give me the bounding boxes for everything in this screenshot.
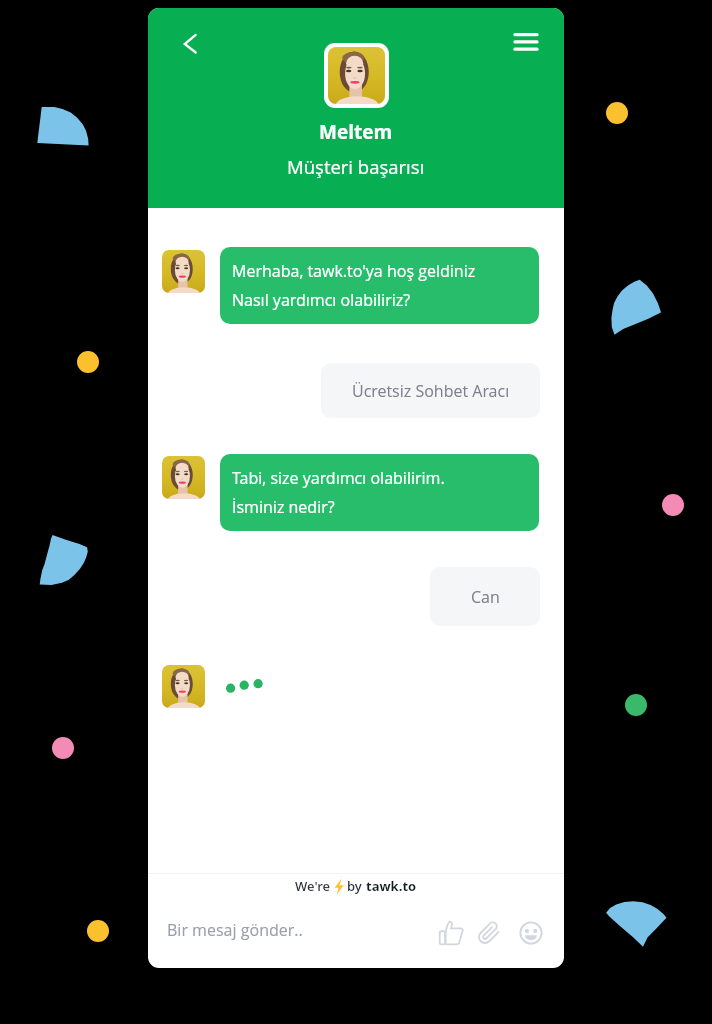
- button[interactable]: Tabi, size yardımcı olabilirim.: [220, 454, 539, 531]
- staticText: We're: [295, 877, 331, 895]
- staticText: İsminiz nedir?: [232, 496, 335, 518]
- staticText: tawk.to: [366, 877, 417, 895]
- button[interactable]: Like: [432, 914, 469, 951]
- staticText: Ücretsiz Sohbet Aracı: [352, 380, 510, 402]
- staticText: Can: [471, 586, 500, 608]
- staticText: Tabi, size yardımcı olabilirim.: [232, 467, 445, 489]
- staticText: Bir mesaj gönder..: [167, 919, 303, 941]
- button[interactable]: Bir mesaj gönder..: [167, 913, 367, 947]
- button[interactable]: Ücretsiz Sohbet Aracı: [321, 363, 540, 418]
- button[interactable]: Menu: [502, 17, 550, 65]
- staticText: Müşteri başarısı: [287, 154, 425, 179]
- staticText: by: [347, 877, 366, 895]
- staticText: Merhaba, tawk.to'ya hoş geldiniz: [232, 260, 476, 282]
- button[interactable]: Merhaba, tawk.to'ya hoş geldiniz: [220, 247, 539, 324]
- staticText: Meltem: [319, 119, 393, 145]
- button[interactable]: Back: [161, 20, 209, 68]
- button[interactable]: Emoji: [512, 914, 549, 951]
- button[interactable]: Attach file: [470, 914, 507, 951]
- staticText: Nasıl yardımcı olabiliriz?: [232, 289, 411, 311]
- button[interactable]: Can: [430, 567, 540, 626]
